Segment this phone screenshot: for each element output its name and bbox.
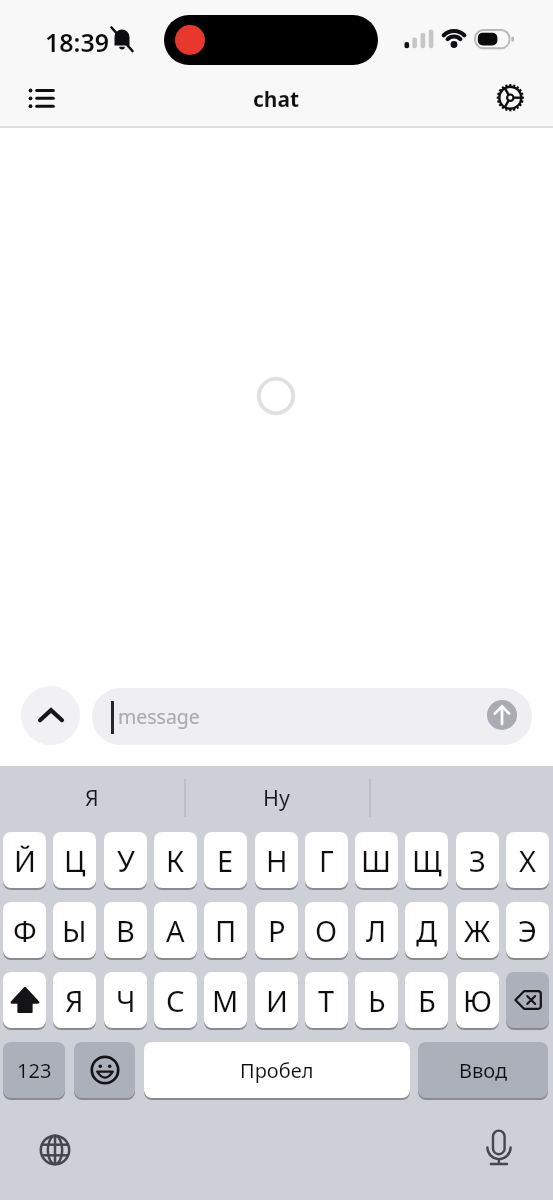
button[interactable]: Э xyxy=(506,902,549,958)
button[interactable]: О xyxy=(305,902,348,958)
staticText: Р xyxy=(268,911,286,950)
staticText: К xyxy=(166,841,185,880)
button[interactable] xyxy=(74,1042,135,1098)
staticText: chat xyxy=(253,85,300,113)
staticText: Й xyxy=(14,841,36,880)
button[interactable]: М xyxy=(204,972,247,1028)
button[interactable] xyxy=(495,83,525,113)
staticText: О xyxy=(315,911,338,950)
button[interactable]: Ы xyxy=(53,902,96,958)
staticText: Ж xyxy=(464,911,491,950)
staticText: Ю xyxy=(463,981,492,1020)
staticText: Н xyxy=(266,841,288,880)
button[interactable]: Пробел xyxy=(144,1042,410,1098)
staticText: В xyxy=(116,911,135,950)
staticText: Ь xyxy=(368,981,386,1020)
button[interactable]: 123 xyxy=(3,1042,65,1098)
staticText: Г xyxy=(319,841,334,880)
staticText: А xyxy=(166,911,185,950)
button[interactable]: Е xyxy=(204,832,247,888)
button[interactable] xyxy=(21,686,80,745)
staticText: Ввод xyxy=(459,1057,508,1084)
button[interactable]: Б xyxy=(405,972,448,1028)
button[interactable]: Ж xyxy=(456,902,499,958)
button[interactable]: Ь xyxy=(355,972,398,1028)
button[interactable] xyxy=(39,1134,71,1166)
staticText: С xyxy=(166,981,185,1020)
button[interactable]: С xyxy=(154,972,197,1028)
button[interactable]: Х xyxy=(506,832,549,888)
button[interactable]: Л xyxy=(355,902,398,958)
button[interactable]: Ю xyxy=(456,972,499,1028)
button[interactable] xyxy=(506,972,549,1028)
staticText: Ш xyxy=(361,841,392,880)
staticText: Ф xyxy=(13,911,37,950)
button[interactable]: Ц xyxy=(53,832,96,888)
staticText: З xyxy=(469,841,486,880)
staticText: Ы xyxy=(62,911,87,950)
staticText: Х xyxy=(519,841,537,880)
button[interactable]: В xyxy=(104,902,147,958)
staticText: Б xyxy=(418,981,436,1020)
staticText: Я xyxy=(65,981,84,1020)
button[interactable]: Г xyxy=(305,832,348,888)
staticText: П xyxy=(215,911,237,950)
staticText: Ц xyxy=(64,841,86,880)
staticText: Ну xyxy=(263,783,290,812)
staticText: Пробел xyxy=(240,1057,314,1084)
button[interactable]: Д xyxy=(405,902,448,958)
button[interactable] xyxy=(487,1127,511,1167)
button[interactable] xyxy=(487,700,517,730)
staticText: Т xyxy=(318,981,335,1020)
staticText: Ч xyxy=(116,981,136,1020)
button[interactable]: Ф xyxy=(3,902,46,958)
button[interactable]: Ч xyxy=(104,972,147,1028)
button[interactable] xyxy=(26,85,58,113)
staticText: Д xyxy=(416,911,438,950)
staticText: 18:39 xyxy=(45,25,110,55)
button[interactable]: Н xyxy=(255,832,298,888)
button[interactable]: К xyxy=(154,832,197,888)
button[interactable]: Й xyxy=(3,832,46,888)
staticText: 123 xyxy=(17,1057,52,1084)
staticText: Щ xyxy=(412,841,442,880)
button[interactable]: А xyxy=(154,902,197,958)
staticText: М xyxy=(212,981,239,1020)
staticText: У xyxy=(117,841,135,880)
button[interactable]: Щ xyxy=(405,832,448,888)
button[interactable]: Р xyxy=(255,902,298,958)
button[interactable]: П xyxy=(204,902,247,958)
button[interactable]: З xyxy=(456,832,499,888)
button[interactable] xyxy=(3,972,46,1028)
button[interactable]: У xyxy=(104,832,147,888)
button[interactable]: Т xyxy=(305,972,348,1028)
staticText: message xyxy=(118,703,200,730)
button[interactable]: Ввод xyxy=(418,1042,548,1098)
button[interactable]: Ш xyxy=(355,832,398,888)
staticText: Л xyxy=(366,911,387,950)
staticText: Е xyxy=(217,841,234,880)
button[interactable]: И xyxy=(255,972,298,1028)
staticText: И xyxy=(266,981,288,1020)
button[interactable] xyxy=(92,688,532,745)
staticText: Я xyxy=(85,783,99,812)
button[interactable]: Я xyxy=(53,972,96,1028)
staticText: Э xyxy=(518,911,537,950)
